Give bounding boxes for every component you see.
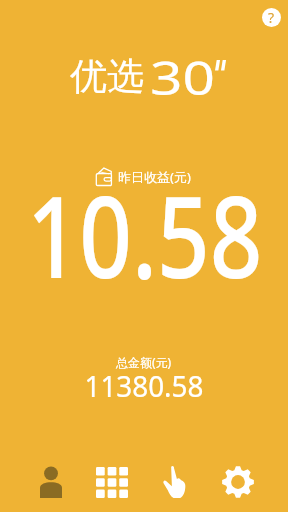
staticText: 总金额(元) xyxy=(116,354,172,370)
button[interactable]: Settings xyxy=(220,464,256,500)
staticText: 11380.58 xyxy=(84,366,203,405)
staticText: 昨日收益(元) xyxy=(118,168,191,186)
staticText: 30 xyxy=(150,47,215,108)
button[interactable]: Help xyxy=(262,8,281,27)
button[interactable]: Apps xyxy=(94,464,130,500)
button[interactable]: Tap xyxy=(157,464,193,500)
staticText: 优选 xyxy=(70,53,144,100)
button[interactable]: Profile xyxy=(33,464,69,500)
staticText: 10.58 xyxy=(27,157,261,311)
staticText: ? xyxy=(268,8,275,27)
